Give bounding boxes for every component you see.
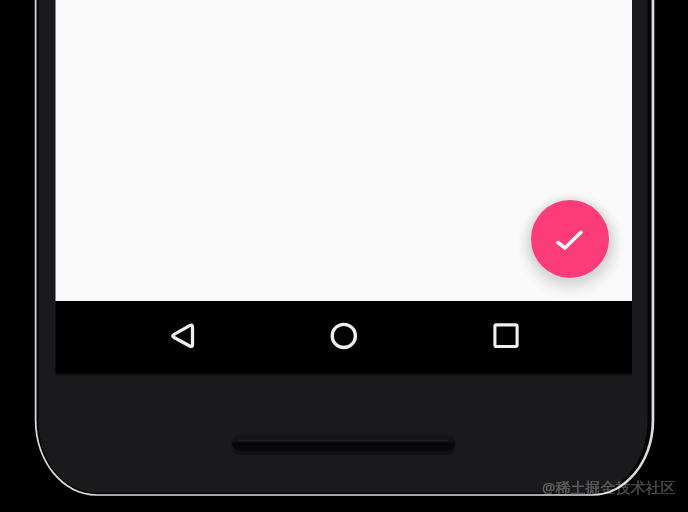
staticText: @稀土掘金技术社区	[542, 477, 676, 497]
button[interactable]: Recent apps	[440, 301, 632, 373]
button[interactable]: Back	[56, 301, 248, 373]
button[interactable]: Home	[248, 301, 440, 373]
button[interactable]: Done	[531, 200, 609, 278]
